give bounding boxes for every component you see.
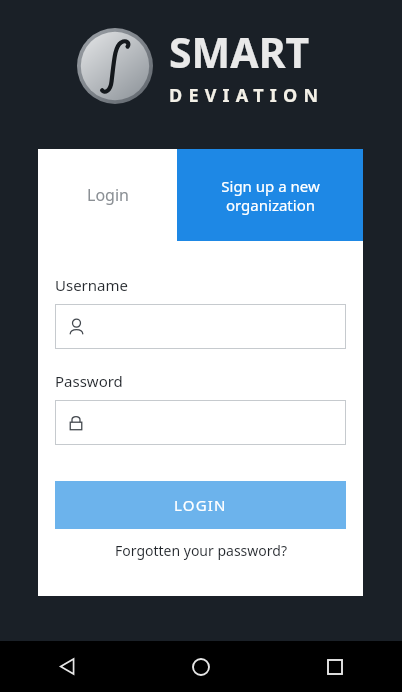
staticText: Password bbox=[55, 371, 123, 391]
button[interactable]: Username field bbox=[55, 304, 346, 349]
button[interactable]: Forgotten your password? bbox=[55, 541, 346, 560]
button[interactable]: Back bbox=[0, 641, 134, 692]
button[interactable]: Home bbox=[134, 641, 268, 692]
button[interactable]: Password field bbox=[55, 400, 346, 445]
button[interactable]: Recent apps bbox=[268, 641, 402, 692]
staticText: SMART bbox=[169, 24, 310, 80]
button[interactable]: LOGIN bbox=[55, 481, 346, 529]
staticText: Login bbox=[87, 184, 129, 206]
button[interactable]: Login bbox=[38, 149, 177, 241]
staticText: Username bbox=[55, 275, 128, 295]
staticText: Sign up a new organization bbox=[221, 176, 320, 215]
button[interactable]: Sign up a new organization bbox=[177, 149, 363, 241]
staticText: DEVIATION bbox=[169, 83, 325, 108]
staticText: LOGIN bbox=[174, 495, 227, 515]
staticText: Forgotten your password? bbox=[115, 541, 287, 560]
